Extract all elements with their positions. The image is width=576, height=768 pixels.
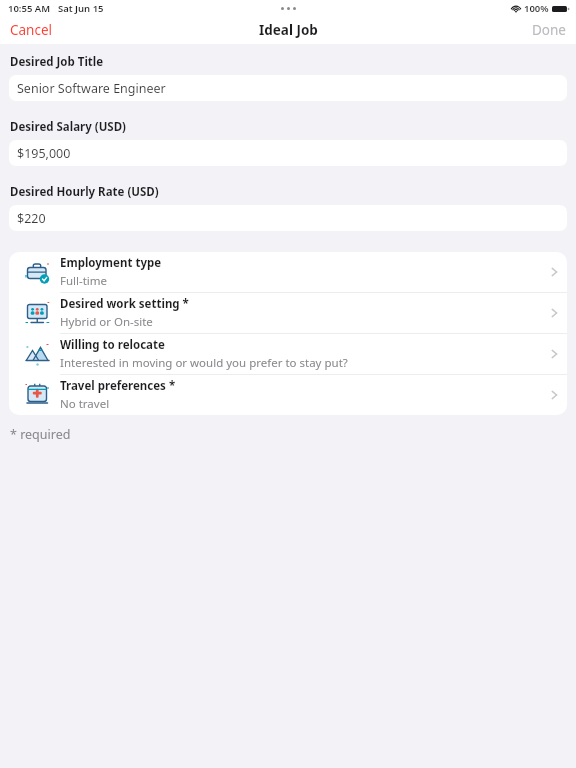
staticText: Cancel xyxy=(10,21,53,39)
button[interactable]: Cancel xyxy=(0,16,63,44)
staticText: $220 xyxy=(17,210,46,227)
other: Open Desired work setting * xyxy=(541,293,567,333)
staticText: Willing to relocate xyxy=(60,337,165,353)
staticText: Desired Job Title xyxy=(10,54,104,70)
staticText: Travel preferences * xyxy=(60,378,176,394)
staticText: * required xyxy=(10,426,71,443)
other: Open Employment type xyxy=(541,252,567,292)
staticText: Senior Software Engineer xyxy=(17,80,166,97)
staticText: Ideal Job xyxy=(259,21,318,39)
other: Open Willing to relocate xyxy=(541,334,567,374)
staticText: Employment type xyxy=(60,255,162,271)
staticText: Desired Salary (USD) xyxy=(10,119,127,135)
button[interactable]: Done xyxy=(522,16,576,44)
button[interactable]: Willing to relocate xyxy=(9,334,567,374)
button[interactable]: $220 xyxy=(9,205,567,231)
button[interactable]: Senior Software Engineer xyxy=(9,75,567,101)
staticText: 10:55 AM xyxy=(8,2,51,15)
staticText: No travel xyxy=(60,396,110,412)
staticText: Full-time xyxy=(60,273,108,289)
staticText: Sat Jun 15 xyxy=(58,2,104,15)
button[interactable]: $195,000 xyxy=(9,140,567,166)
staticText: Hybrid or On-site xyxy=(60,314,153,330)
button[interactable]: Employment type xyxy=(9,252,567,292)
staticText: Interested in moving or would you prefer… xyxy=(60,355,348,371)
staticText: $195,000 xyxy=(17,145,71,162)
staticText: Desired Hourly Rate (USD) xyxy=(10,184,159,200)
staticText: Desired work setting * xyxy=(60,296,189,312)
staticText: Done xyxy=(532,21,566,39)
staticText: 100% xyxy=(524,2,549,15)
other: Open Travel preferences * xyxy=(541,375,567,415)
button[interactable]: Travel preferences * xyxy=(9,375,567,415)
button[interactable]: Desired work setting * xyxy=(9,293,567,333)
